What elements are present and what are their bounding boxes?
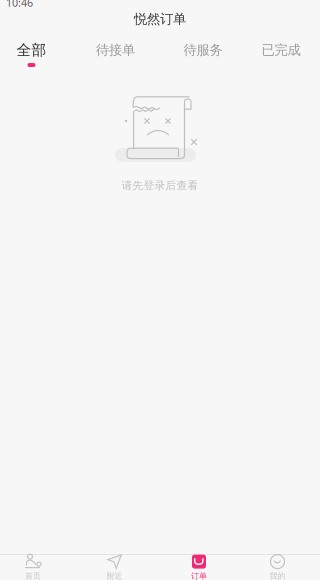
button[interactable]: 已完成 (238, 39, 320, 73)
staticText: 附近 (106, 571, 122, 580)
button[interactable]: 全部 (0, 39, 63, 73)
button[interactable]: 待接单 (63, 39, 168, 73)
staticText: 我的 (269, 571, 285, 580)
button[interactable]: 附近 (66, 554, 163, 580)
staticText: 待接单 (96, 42, 135, 58)
button[interactable]: 首页 (0, 554, 66, 580)
staticText: 已完成 (261, 42, 300, 58)
button[interactable]: 我的 (235, 554, 320, 580)
staticText: 待服务 (183, 42, 222, 58)
staticText: 悦然订单 (134, 11, 186, 27)
button[interactable]: 订单 (163, 554, 235, 580)
staticText: 请先登录后查看 (121, 179, 198, 192)
staticText: 10:46 (6, 0, 33, 10)
staticText: 首页 (25, 571, 41, 580)
button[interactable]: 待服务 (168, 39, 238, 73)
staticText: 全部 (16, 41, 46, 59)
staticText: 订单 (191, 571, 207, 580)
